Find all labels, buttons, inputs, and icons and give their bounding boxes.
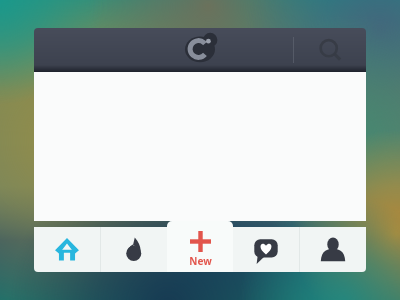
staticText: New xyxy=(189,254,212,268)
button[interactable]: Profile xyxy=(300,227,366,272)
button[interactable]: Search xyxy=(294,28,366,72)
button[interactable]: Messages xyxy=(233,227,299,272)
button[interactable]: Home logo xyxy=(179,30,221,68)
button[interactable]: Home xyxy=(34,227,100,272)
button[interactable]: Trending xyxy=(101,227,167,272)
button[interactable]: New xyxy=(167,221,233,272)
